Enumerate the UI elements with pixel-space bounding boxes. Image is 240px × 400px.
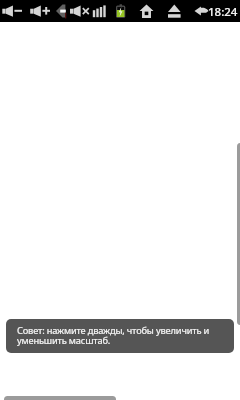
button[interactable]: Volume up	[30, 0, 50, 22]
button[interactable]: Совет: нажмите дважды, чтобы увеличить и…	[6, 319, 234, 353]
button[interactable]: Home	[139, 0, 155, 22]
button[interactable]: Mobile signal strength	[92, 0, 108, 22]
button[interactable]: Volume down	[2, 0, 22, 22]
staticText: Совет: нажмите дважды, чтобы увеличить и…	[17, 324, 224, 347]
button[interactable]: Back	[56, 0, 68, 22]
staticText: 18:24	[208, 4, 238, 20]
button[interactable]: Silent mode	[70, 0, 90, 22]
button[interactable]: Battery charging	[114, 0, 128, 22]
button[interactable]: Eject storage	[166, 0, 182, 22]
button[interactable]: Status bar	[0, 0, 240, 22]
button[interactable]: Back	[194, 0, 210, 22]
